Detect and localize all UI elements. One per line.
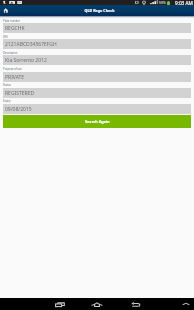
button[interactable]: Search Again [3,115,191,128]
staticText: Search Again [85,119,110,124]
staticText: Kia Sorrento 2012 [5,57,47,64]
staticText: Purpose of use [3,67,22,71]
staticText: 09/08/2015 [5,106,32,113]
button[interactable]: Recents [45,298,75,310]
staticText: QLD Rego Check [84,8,115,13]
staticText: PRIVATE [5,74,25,81]
staticText: Status [3,83,11,87]
staticText: 9:03 AM [175,0,193,5]
staticText: VIN [3,35,8,39]
other: App logo [3,8,8,13]
button[interactable]: Home [82,298,112,310]
staticText: Plate number [3,19,21,23]
staticText: 2121ABCD34567EFGH [5,41,57,48]
button[interactable]: Show notifications [180,298,192,310]
staticText: REGCHK [5,25,25,32]
staticText: Expiry [3,99,11,103]
staticText: Description [3,51,18,55]
staticText: 50% [159,0,166,5]
staticText: REGISTERED [5,90,35,97]
button[interactable]: Back [120,298,150,310]
